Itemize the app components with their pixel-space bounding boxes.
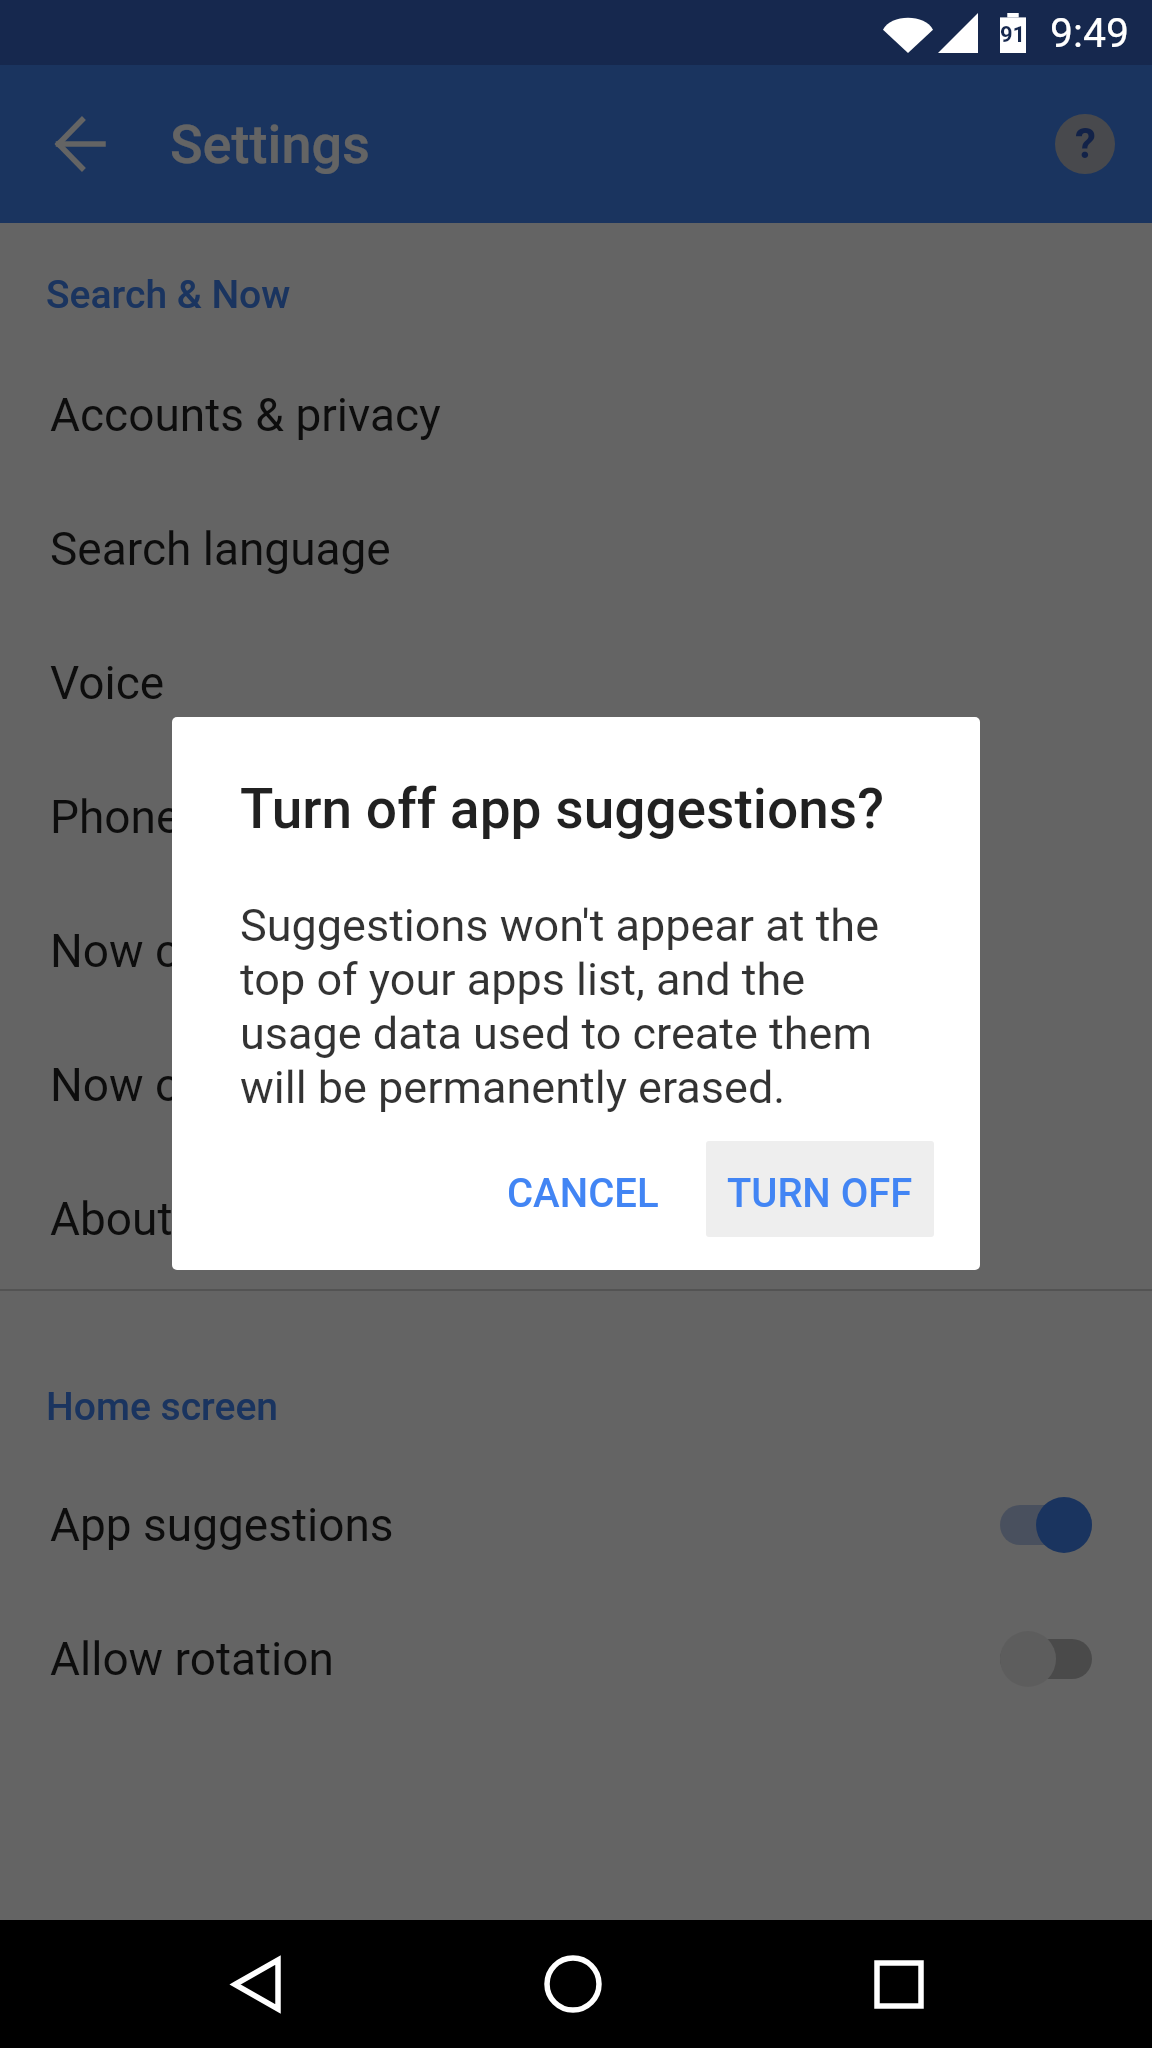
staticText: Turn off app suggestions? [240,777,884,841]
button[interactable]: Navigate up [32,96,128,192]
button[interactable]: Back [196,1920,316,2048]
staticText: Settings [170,113,370,176]
staticText: Search & Now [46,272,291,318]
staticText: Voice [50,656,165,710]
staticText: Accounts & privacy [50,388,441,442]
staticText: Now cards [50,924,269,978]
staticText: TURN OFF [727,1170,913,1217]
staticText: CANCEL [507,1170,659,1217]
staticText: Search language [50,522,391,576]
button[interactable]: Search language [0,482,1152,616]
button[interactable]: Accounts & privacy [0,348,1152,482]
staticText: App suggestions [50,1498,394,1552]
staticText: 91 [1000,22,1026,48]
staticText: Allow rotation [50,1632,334,1686]
button[interactable]: CANCEL [484,1141,682,1237]
button[interactable]: Now on Tap [0,1018,1152,1152]
button[interactable]: Home [513,1920,633,2048]
staticText: About [50,1192,173,1246]
button[interactable]: About [0,1152,1152,1286]
staticText: Phone search [50,790,330,844]
staticText: ? [1075,119,1096,168]
staticText: Suggestions won't appear at the top of y… [240,899,912,1114]
staticText: Now on Tap [50,1058,293,1112]
button[interactable]: Phone search [0,750,1152,884]
button[interactable]: Recent apps [839,1920,959,2048]
button[interactable]: Help [1037,96,1133,192]
button[interactable]: Allow rotation [0,1592,1152,1726]
button[interactable]: App suggestions [0,1458,1152,1592]
button[interactable]: Now cards [0,884,1152,1018]
staticText: 9:49 [1050,9,1130,57]
button[interactable]: Voice [0,616,1152,750]
staticText: Home screen [46,1384,279,1430]
button[interactable]: TURN OFF [706,1141,934,1237]
